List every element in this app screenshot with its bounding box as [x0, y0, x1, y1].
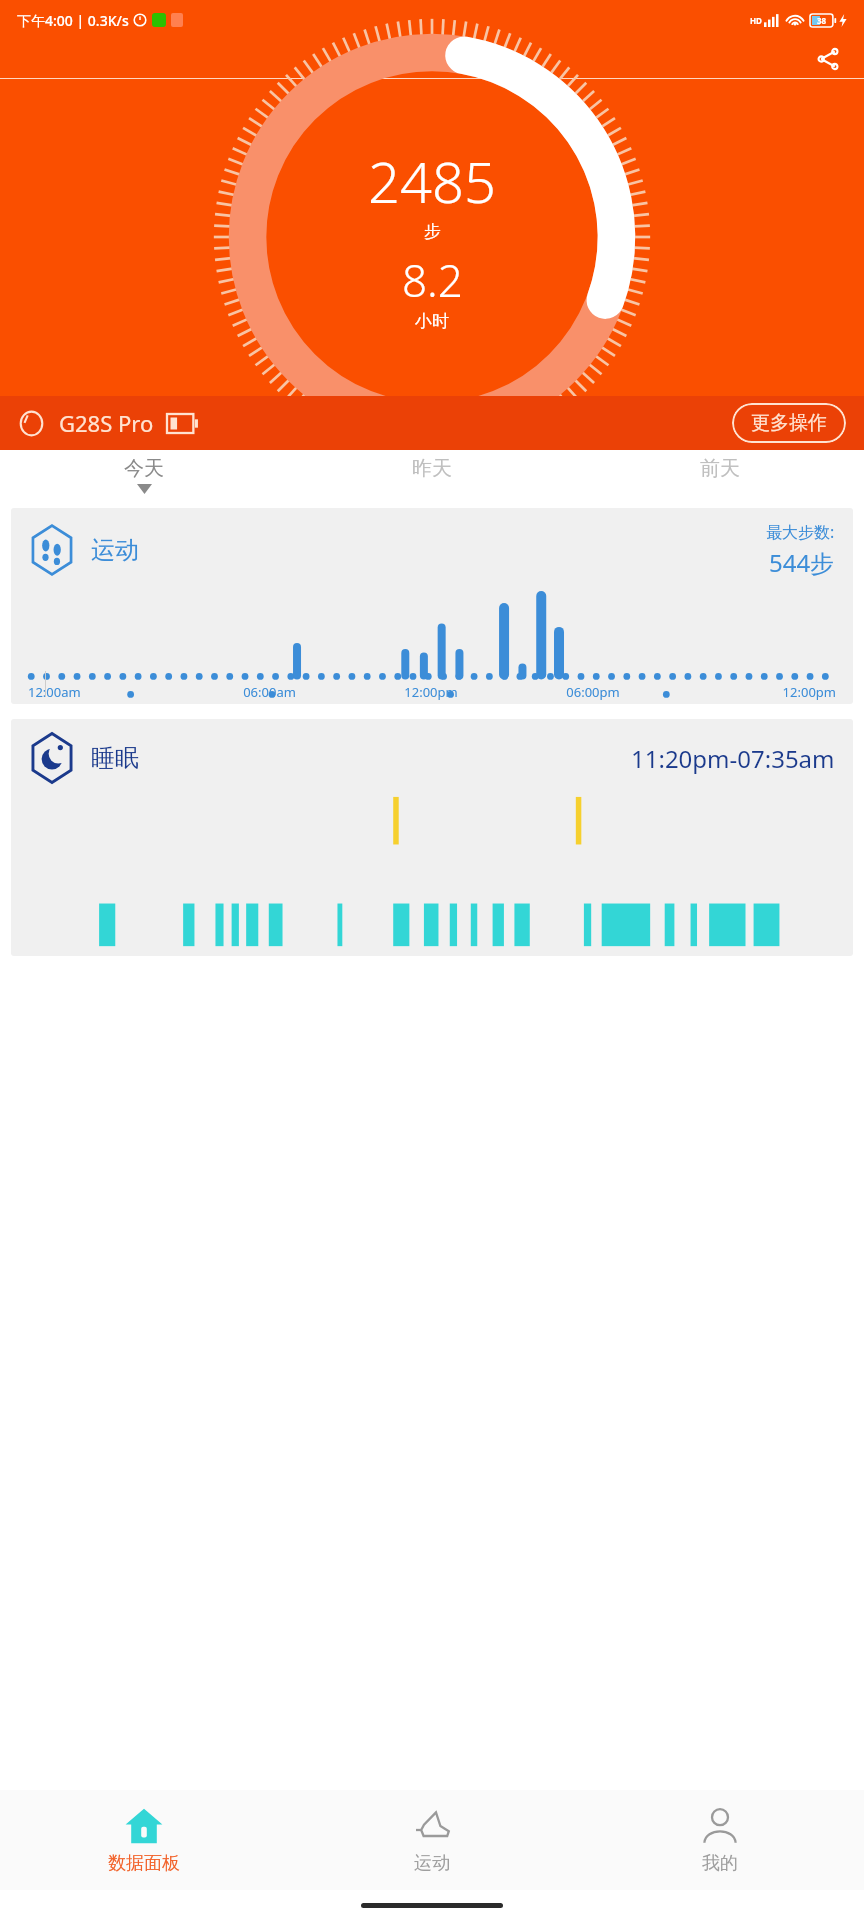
staticText: 2485 — [368, 143, 496, 219]
button[interactable]: Share — [810, 41, 846, 77]
staticText: 06:00am — [189, 683, 350, 701]
staticText: 数据面板 — [108, 1852, 180, 1875]
staticText: HD — [750, 15, 762, 26]
staticText: 运动 — [91, 535, 139, 565]
staticText: 睡眠 — [91, 743, 139, 773]
staticText: 数据面板 — [390, 46, 474, 72]
staticText: 12:00pm — [674, 683, 836, 701]
staticText: 小时 — [415, 311, 449, 332]
button[interactable]: 今天 — [0, 450, 288, 503]
staticText: 今天 — [124, 456, 164, 481]
staticText: 昨天 — [412, 456, 452, 481]
button[interactable]: 数据面板 — [0, 1790, 288, 1890]
staticText: 544步 — [769, 546, 835, 579]
button[interactable]: 前天 — [576, 450, 864, 503]
staticText: 12:00am — [28, 683, 189, 701]
staticText: 下午4:00 | 0.3K/s — [17, 11, 129, 30]
button[interactable]: 运动 — [11, 508, 853, 704]
staticText: 06:00pm — [512, 683, 674, 701]
staticText: 更多操作 — [751, 411, 827, 435]
staticText: G28S Pro — [59, 408, 154, 438]
staticText: 步 — [424, 221, 441, 242]
staticText: 最大步数: — [766, 521, 835, 543]
button[interactable]: 更多操作 — [732, 403, 846, 443]
button[interactable]: 我的 — [576, 1790, 864, 1890]
staticText: 前天 — [700, 456, 740, 481]
button[interactable]: 睡眠 — [11, 719, 853, 956]
staticText: 我的 — [702, 1852, 738, 1875]
button[interactable]: 运动 — [288, 1790, 576, 1890]
staticText: 12:00pm — [350, 683, 512, 701]
staticText: 运动 — [414, 1852, 450, 1875]
staticText: 38 — [817, 15, 827, 26]
staticText: 8.2 — [402, 250, 463, 310]
button[interactable]: 昨天 — [288, 450, 576, 503]
staticText: 11:20pm-07:35am — [631, 742, 835, 775]
